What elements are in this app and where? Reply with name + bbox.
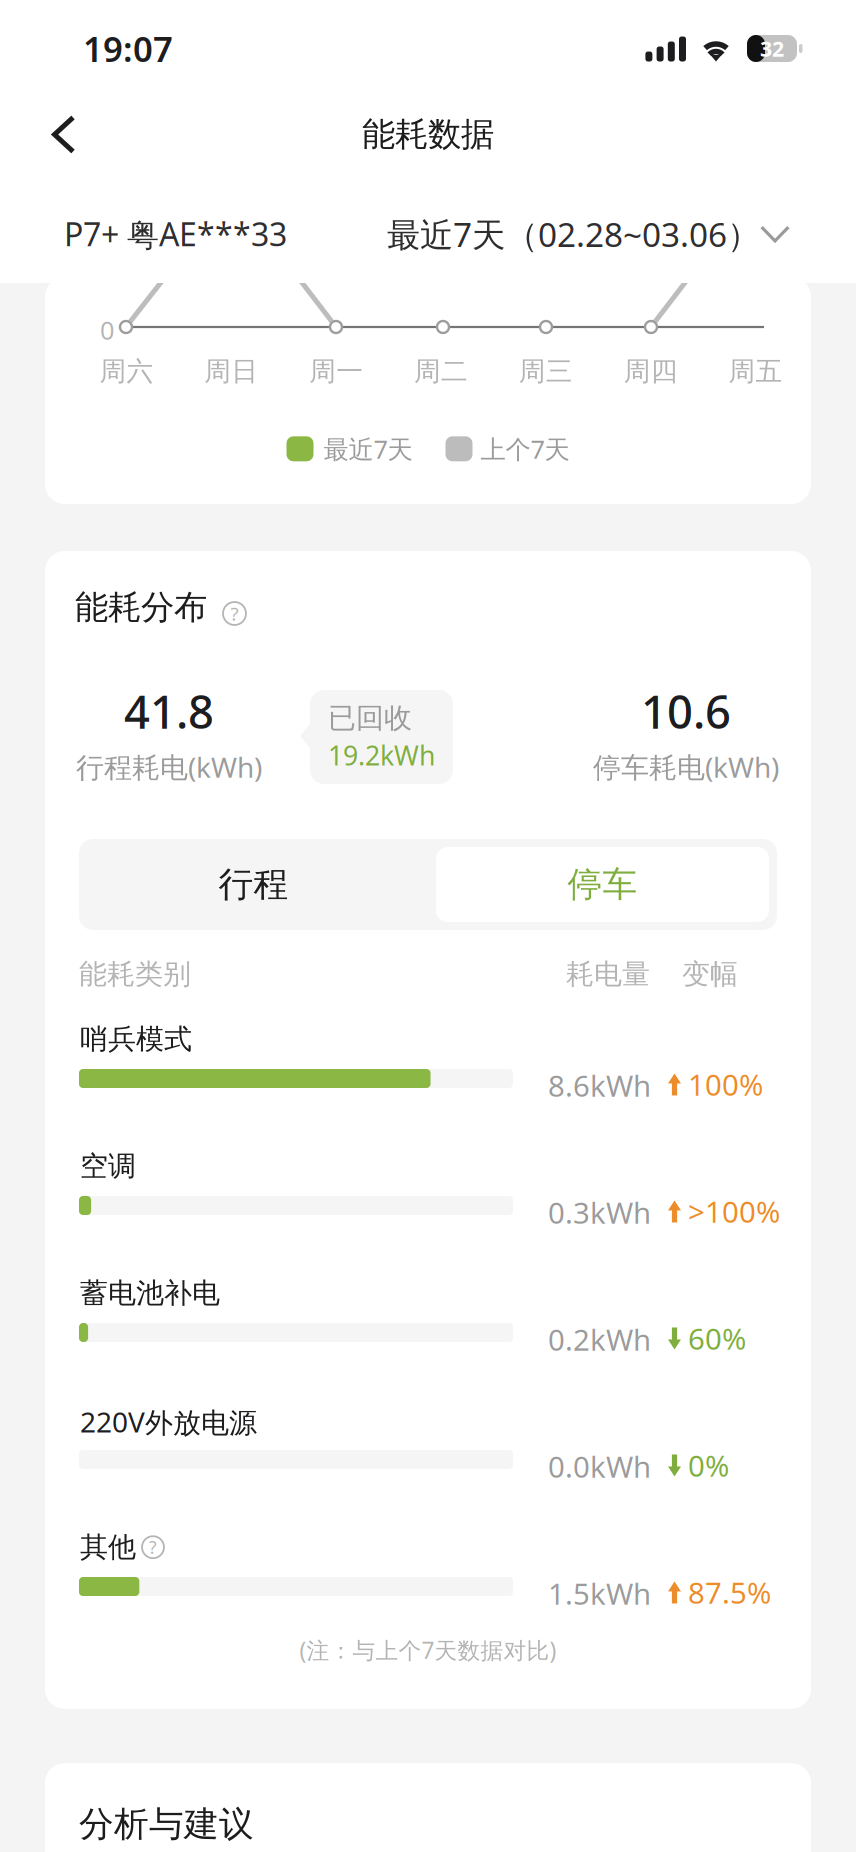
staticText: 41.8	[124, 681, 214, 741]
staticText: 周三	[519, 355, 573, 388]
staticText: 10.6	[641, 681, 731, 741]
staticText: 已回收	[328, 701, 412, 735]
staticText: 上个7天	[480, 432, 569, 466]
staticText: 变幅	[682, 957, 738, 991]
staticText: 耗电量	[566, 957, 650, 991]
staticText: 19:07	[83, 25, 173, 71]
staticText: 0.2kWh	[548, 1320, 651, 1359]
staticText: ?	[230, 601, 238, 626]
staticText: 停车	[567, 863, 637, 906]
button[interactable]: 最近7天（02.28~03.06）	[387, 212, 790, 256]
staticText: 0.3kWh	[548, 1193, 651, 1232]
staticText: 周日	[204, 355, 258, 388]
button[interactable]: 返回	[32, 102, 96, 166]
staticText: 能耗分布	[75, 587, 207, 628]
staticText: 能耗类别	[79, 957, 191, 991]
staticText: 哨兵模式	[80, 1022, 192, 1056]
staticText: 周五	[729, 355, 783, 388]
button[interactable]: 行程	[79, 839, 428, 930]
staticText: 100%	[688, 1065, 763, 1104]
staticText: 87.5%	[688, 1573, 771, 1612]
staticText: 周一	[309, 355, 363, 388]
staticText: 8.6kWh	[548, 1066, 651, 1105]
staticText: 周二	[414, 355, 468, 388]
staticText: 能耗数据	[362, 114, 494, 155]
staticText: 19.2kWh	[328, 737, 435, 773]
staticText: ?	[149, 1536, 157, 1559]
staticText: 0%	[688, 1446, 729, 1485]
staticText: 32	[760, 34, 784, 63]
staticText: (注：与上个7天数据对比)	[299, 1635, 556, 1665]
staticText: 停车耗电(kWh)	[593, 748, 779, 785]
staticText: 行程耗电(kWh)	[76, 748, 262, 785]
staticText: 空调	[80, 1149, 136, 1183]
staticText: P7+ 粤AE***33	[64, 213, 287, 255]
staticText: 0	[100, 313, 114, 347]
staticText: 最近7天（02.28~03.06）	[387, 212, 760, 256]
staticText: 周六	[99, 355, 153, 388]
button[interactable]: 停车	[428, 839, 777, 930]
staticText: 周四	[624, 355, 678, 388]
staticText: 其他	[80, 1530, 136, 1564]
staticText: 蓄电池补电	[80, 1276, 220, 1310]
staticText: 最近7天	[323, 432, 412, 466]
button[interactable]: P7+ 粤AE***33	[64, 213, 287, 255]
staticText: 1.5kWh	[548, 1574, 651, 1613]
staticText: 220V外放电源	[80, 1403, 257, 1440]
staticText: 分析与建议	[79, 1803, 254, 1846]
staticText: 行程	[218, 863, 288, 906]
staticText: >100%	[688, 1192, 780, 1231]
staticText: 0.0kWh	[548, 1447, 651, 1486]
staticText: 60%	[688, 1319, 746, 1358]
